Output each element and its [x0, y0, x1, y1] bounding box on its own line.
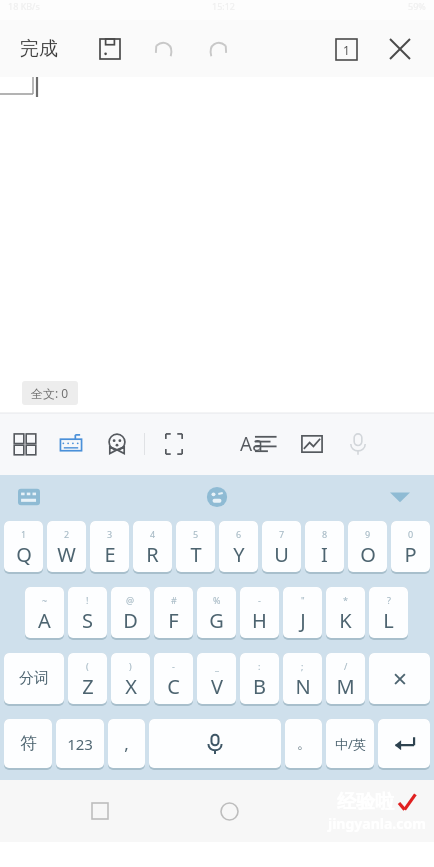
- button[interactable]: Emoji: [201, 481, 233, 513]
- button[interactable]: 符: [4, 719, 52, 768]
- staticText: ✕: [392, 668, 408, 690]
- button[interactable]: Close: [378, 27, 422, 71]
- staticText: -: [258, 594, 261, 606]
- button[interactable]: 7: [262, 521, 301, 572]
- button[interactable]: 8: [305, 521, 344, 572]
- button[interactable]: Space / Voice input: [149, 719, 281, 768]
- button[interactable]: 全文: 0: [22, 381, 78, 405]
- button[interactable]: -: [154, 653, 193, 704]
- button[interactable]: Sticker: [100, 427, 134, 461]
- button[interactable]: Voice: [341, 427, 375, 461]
- staticText: :: [258, 660, 261, 672]
- button[interactable]: /: [326, 653, 365, 704]
- button[interactable]: 2: [47, 521, 86, 572]
- button[interactable]: ~: [25, 587, 64, 638]
- button[interactable]: 0: [391, 521, 430, 572]
- staticText: 中/英: [335, 735, 366, 753]
- button[interactable]: ;: [283, 653, 322, 704]
- button[interactable]: Undo: [144, 29, 184, 69]
- staticText: 0: [408, 528, 414, 540]
- staticText: 完成: [20, 37, 58, 61]
- staticText: X: [125, 673, 137, 700]
- staticText: 59%: [408, 0, 426, 12]
- staticText: ): [129, 660, 132, 672]
- staticText: G: [209, 607, 224, 634]
- staticText: 1: [21, 528, 27, 540]
- staticText: jingyanla.com: [328, 814, 426, 833]
- button[interactable]: @: [111, 587, 150, 638]
- button[interactable]: ": [283, 587, 322, 638]
- button[interactable]: 。: [285, 719, 322, 768]
- button[interactable]: 3: [90, 521, 129, 572]
- staticText: ~: [42, 594, 48, 606]
- staticText: A: [38, 607, 51, 634]
- staticText: Aa: [240, 431, 263, 457]
- staticText: ?: [387, 594, 391, 606]
- staticText: 5: [193, 528, 199, 540]
- staticText: I: [321, 541, 328, 568]
- staticText: 2: [64, 528, 70, 540]
- button[interactable]: -: [240, 587, 279, 638]
- button[interactable]: ,: [108, 719, 145, 768]
- button[interactable]: Recents: [78, 789, 122, 833]
- button[interactable]: ): [111, 653, 150, 704]
- staticText: T: [190, 541, 202, 568]
- button[interactable]: 分词: [4, 653, 64, 704]
- button[interactable]: Apps: [8, 427, 42, 461]
- button[interactable]: Keyboard layout: [14, 482, 44, 512]
- button[interactable]: *: [326, 587, 365, 638]
- button[interactable]: Backspace: [369, 653, 430, 704]
- button[interactable]: :: [240, 653, 279, 704]
- staticText: W: [57, 541, 76, 568]
- staticText: L: [383, 607, 394, 634]
- staticText: #: [171, 594, 177, 606]
- button[interactable]: ?: [369, 587, 408, 638]
- button[interactable]: 9: [348, 521, 387, 572]
- staticText: -: [172, 660, 175, 672]
- button[interactable]: Hide keyboard: [384, 481, 416, 513]
- button[interactable]: 5: [176, 521, 215, 572]
- staticText: ,: [124, 732, 129, 755]
- staticText: Z: [82, 673, 94, 700]
- button[interactable]: Pages: [326, 29, 366, 69]
- staticText: N: [295, 673, 311, 700]
- button[interactable]: _: [197, 653, 236, 704]
- staticText: 7: [279, 528, 285, 540]
- button[interactable]: Redo: [198, 29, 238, 69]
- button[interactable]: Select: [157, 427, 191, 461]
- staticText: D: [123, 607, 138, 634]
- button[interactable]: 中/英: [326, 719, 374, 768]
- button[interactable]: Home: [207, 789, 251, 833]
- staticText: P: [404, 541, 417, 568]
- staticText: 经验啦: [337, 790, 394, 814]
- button[interactable]: Save: [90, 29, 130, 69]
- button[interactable]: %: [197, 587, 236, 638]
- staticText: _: [215, 660, 219, 672]
- button[interactable]: 完成: [14, 31, 64, 67]
- button[interactable]: Enter: [378, 719, 430, 768]
- staticText: V: [211, 673, 223, 700]
- staticText: O: [360, 541, 376, 568]
- staticText: 4: [150, 528, 156, 540]
- button[interactable]: Keyboard: [54, 427, 88, 461]
- staticText: *: [343, 594, 348, 606]
- button[interactable]: (: [68, 653, 107, 704]
- staticText: 9: [365, 528, 371, 540]
- button[interactable]: 6: [219, 521, 258, 572]
- button[interactable]: Image: [295, 427, 329, 461]
- staticText: 1: [343, 42, 350, 58]
- staticText: K: [339, 607, 352, 634]
- button[interactable]: 4: [133, 521, 172, 572]
- button[interactable]: 1: [4, 521, 43, 572]
- staticText: Y: [233, 541, 245, 568]
- button[interactable]: #: [154, 587, 193, 638]
- button[interactable]: !: [68, 587, 107, 638]
- staticText: B: [253, 673, 266, 700]
- button[interactable]: 123: [56, 719, 104, 768]
- staticText: 3: [107, 528, 113, 540]
- staticText: 全文: 0: [31, 385, 69, 401]
- button[interactable]: Align: [249, 427, 283, 461]
- staticText: 8: [322, 528, 328, 540]
- staticText: 符: [20, 733, 37, 754]
